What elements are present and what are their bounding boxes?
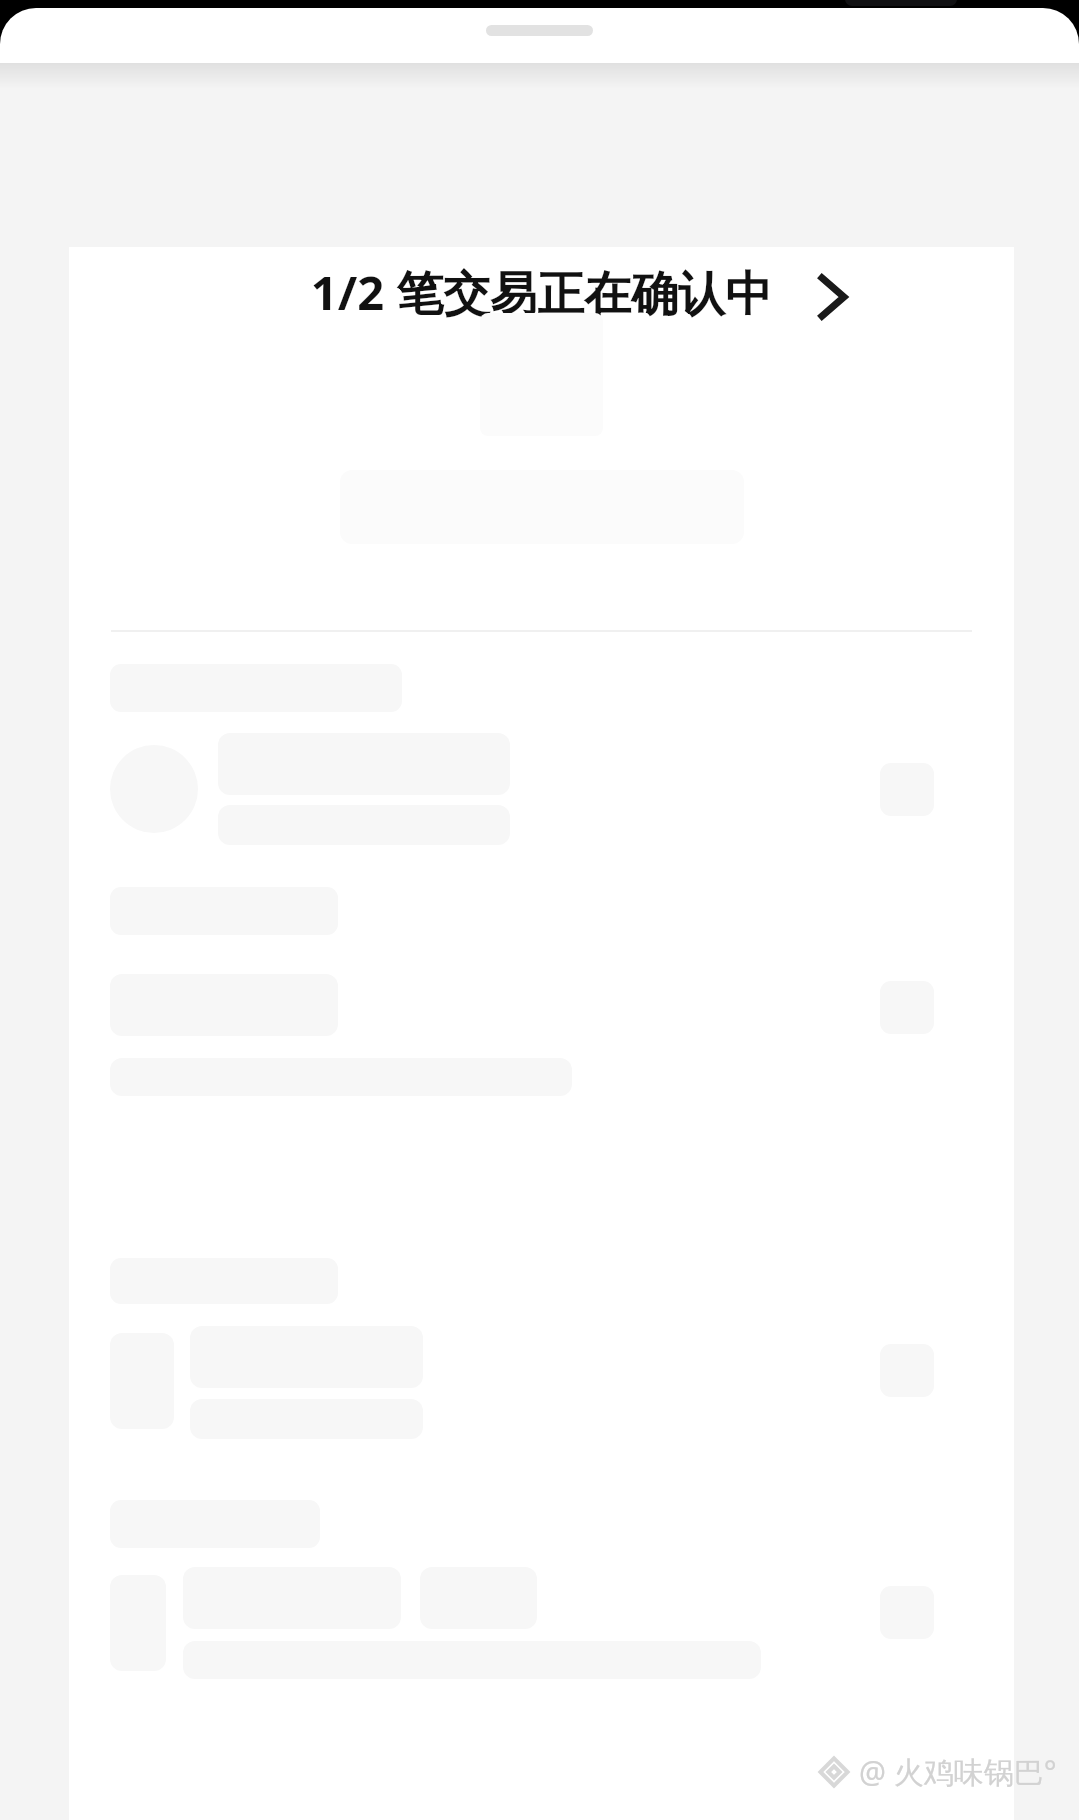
button[interactable]: 1/2 笔交易正在确认中 (109, 260, 974, 324)
button[interactable] (110, 1567, 974, 1687)
button[interactable]: 查看详情 (785, 249, 881, 345)
button[interactable] (110, 959, 974, 1099)
button[interactable] (110, 733, 974, 845)
button[interactable] (110, 1326, 974, 1441)
button[interactable] (486, 25, 593, 36)
staticText: @ 火鸡味锅巴° (859, 1751, 1057, 1792)
